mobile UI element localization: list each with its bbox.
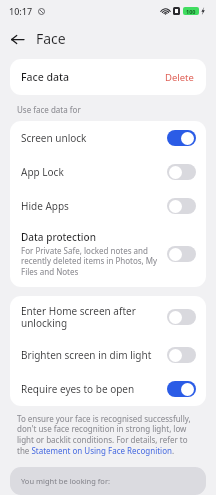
button[interactable]: Brighten screen in dim light [167,347,196,363]
staticText: Use face data for [17,104,81,115]
button[interactable]: To ensure your face is recognised succes… [17,413,199,457]
button[interactable]: Screen unlock [10,121,206,155]
button[interactable]: Data protection [10,223,206,287]
staticText: Screen unlock [21,131,87,145]
staticText: App Lock [21,165,64,179]
staticText: Delete [165,71,194,84]
staticText: 100 [186,8,196,15]
button[interactable]: Data protection [167,246,196,262]
button[interactable]: Require eyes to be open [167,381,196,397]
button[interactable]: Enter Home screen after unlocking [10,296,206,338]
button[interactable]: Back [4,26,30,52]
button[interactable]: App Lock [167,164,196,180]
button[interactable]: Enter Home screen after unlocking [167,309,196,325]
staticText: Require eyes to be open [21,382,135,396]
staticText: Brighten screen in dim light [21,348,152,362]
button[interactable]: Brighten screen in dim light [10,338,206,372]
button[interactable]: App Lock [10,155,206,189]
staticText: Face data [21,70,165,84]
button[interactable]: Hide Apps [167,198,196,214]
staticText: For Private Safe, locked notes and recen… [21,245,159,278]
button[interactable]: Delete [165,71,194,84]
staticText: 10:17 [9,5,33,17]
button[interactable]: Face data [10,59,206,95]
staticText: Face [36,29,66,48]
staticText: Enter Home screen after unlocking [21,304,159,330]
staticText: Data protection [21,230,96,244]
button[interactable]: Hide Apps [10,189,206,223]
staticText: Hide Apps [21,199,69,213]
button[interactable]: Require eyes to be open [10,372,206,406]
button[interactable]: Screen unlock [167,130,196,146]
staticText: You might be looking for: [21,476,111,486]
